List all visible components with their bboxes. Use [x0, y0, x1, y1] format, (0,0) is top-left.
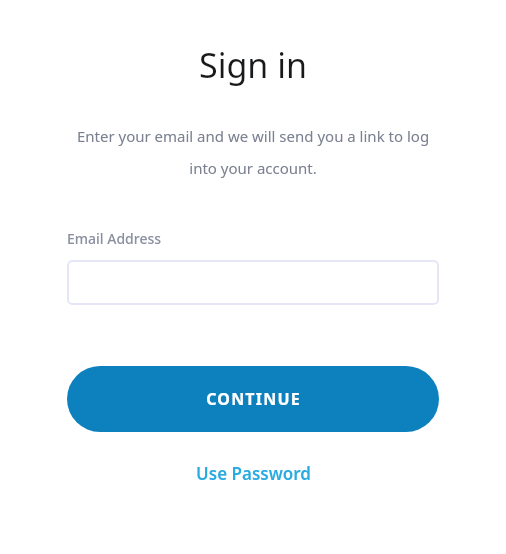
button[interactable]: Use Password	[184, 456, 323, 491]
staticText: Use Password	[196, 462, 311, 485]
button[interactable]: CONTINUE	[67, 366, 439, 432]
staticText: Sign in	[199, 42, 307, 88]
staticText: CONTINUE	[206, 388, 301, 410]
button[interactable]: Email Address input field	[67, 260, 439, 305]
staticText: Enter your email and we will send you a …	[64, 126, 442, 179]
staticText: Email Address	[67, 229, 162, 248]
